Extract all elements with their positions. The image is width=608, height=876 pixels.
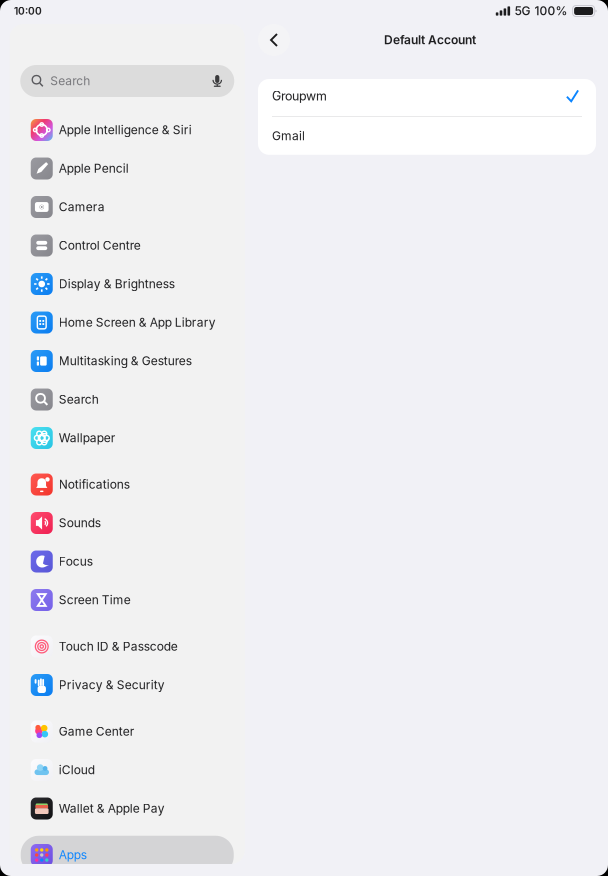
staticText: Default Account — [384, 33, 476, 47]
staticText: Apple Intelligence & Siri — [59, 123, 192, 137]
button[interactable]: Game Center — [21, 712, 234, 751]
button[interactable]: Apps — [21, 836, 234, 874]
staticText: Control Centre — [59, 238, 141, 253]
staticText: Camera — [59, 200, 105, 214]
staticText: Focus — [59, 554, 93, 569]
button[interactable]: Focus — [21, 542, 234, 581]
button[interactable]: Gmail — [258, 117, 596, 155]
staticText: Display & Brightness — [59, 277, 175, 291]
staticText: 10:00 — [14, 5, 42, 17]
button[interactable]: Screen Time — [21, 581, 234, 619]
staticText: Search — [50, 74, 90, 88]
button[interactable]: Control Centre — [21, 226, 234, 265]
staticText: Search — [59, 392, 99, 407]
staticText: Gmail — [272, 128, 305, 143]
staticText: Groupwm — [272, 88, 327, 103]
staticText: Wallpaper — [59, 431, 116, 445]
staticText: Screen Time — [59, 593, 131, 607]
button[interactable]: Apple Pencil — [21, 149, 234, 188]
staticText: 100% — [535, 4, 568, 18]
staticText: Sounds — [59, 516, 101, 530]
button[interactable]: Multitasking & Gestures — [21, 342, 234, 380]
staticText: 5G — [515, 4, 531, 18]
staticText: Privacy & Security — [59, 678, 165, 692]
button[interactable]: Wallpaper — [21, 419, 234, 457]
button[interactable]: Apple Intelligence & Siri — [21, 111, 234, 149]
button[interactable]: Notifications — [21, 465, 234, 504]
button[interactable]: Search — [21, 380, 234, 419]
staticText: iCloud — [59, 763, 95, 777]
button[interactable]: Wallet & Apple Pay — [21, 789, 234, 828]
button[interactable]: Groupwm — [258, 79, 596, 116]
button[interactable]: Privacy & Security — [21, 666, 234, 704]
button[interactable]: Touch ID & Passcode — [21, 627, 234, 666]
staticText: Notifications — [59, 477, 130, 492]
button[interactable]: Home Screen & App Library — [21, 303, 234, 342]
button[interactable]: Back — [258, 24, 290, 56]
button[interactable]: Search — [20, 65, 234, 97]
button[interactable]: iCloud — [21, 751, 234, 789]
staticText: Multitasking & Gestures — [59, 354, 192, 368]
staticText: Home Screen & App Library — [59, 315, 216, 330]
staticText: Touch ID & Passcode — [59, 639, 178, 654]
staticText: Wallet & Apple Pay — [59, 801, 165, 816]
button[interactable]: Camera — [21, 188, 234, 226]
button[interactable]: Display & Brightness — [21, 265, 234, 303]
button[interactable]: Sounds — [21, 504, 234, 542]
staticText: Apps — [59, 848, 87, 862]
staticText: Game Center — [59, 724, 135, 739]
staticText: Apple Pencil — [59, 161, 129, 176]
